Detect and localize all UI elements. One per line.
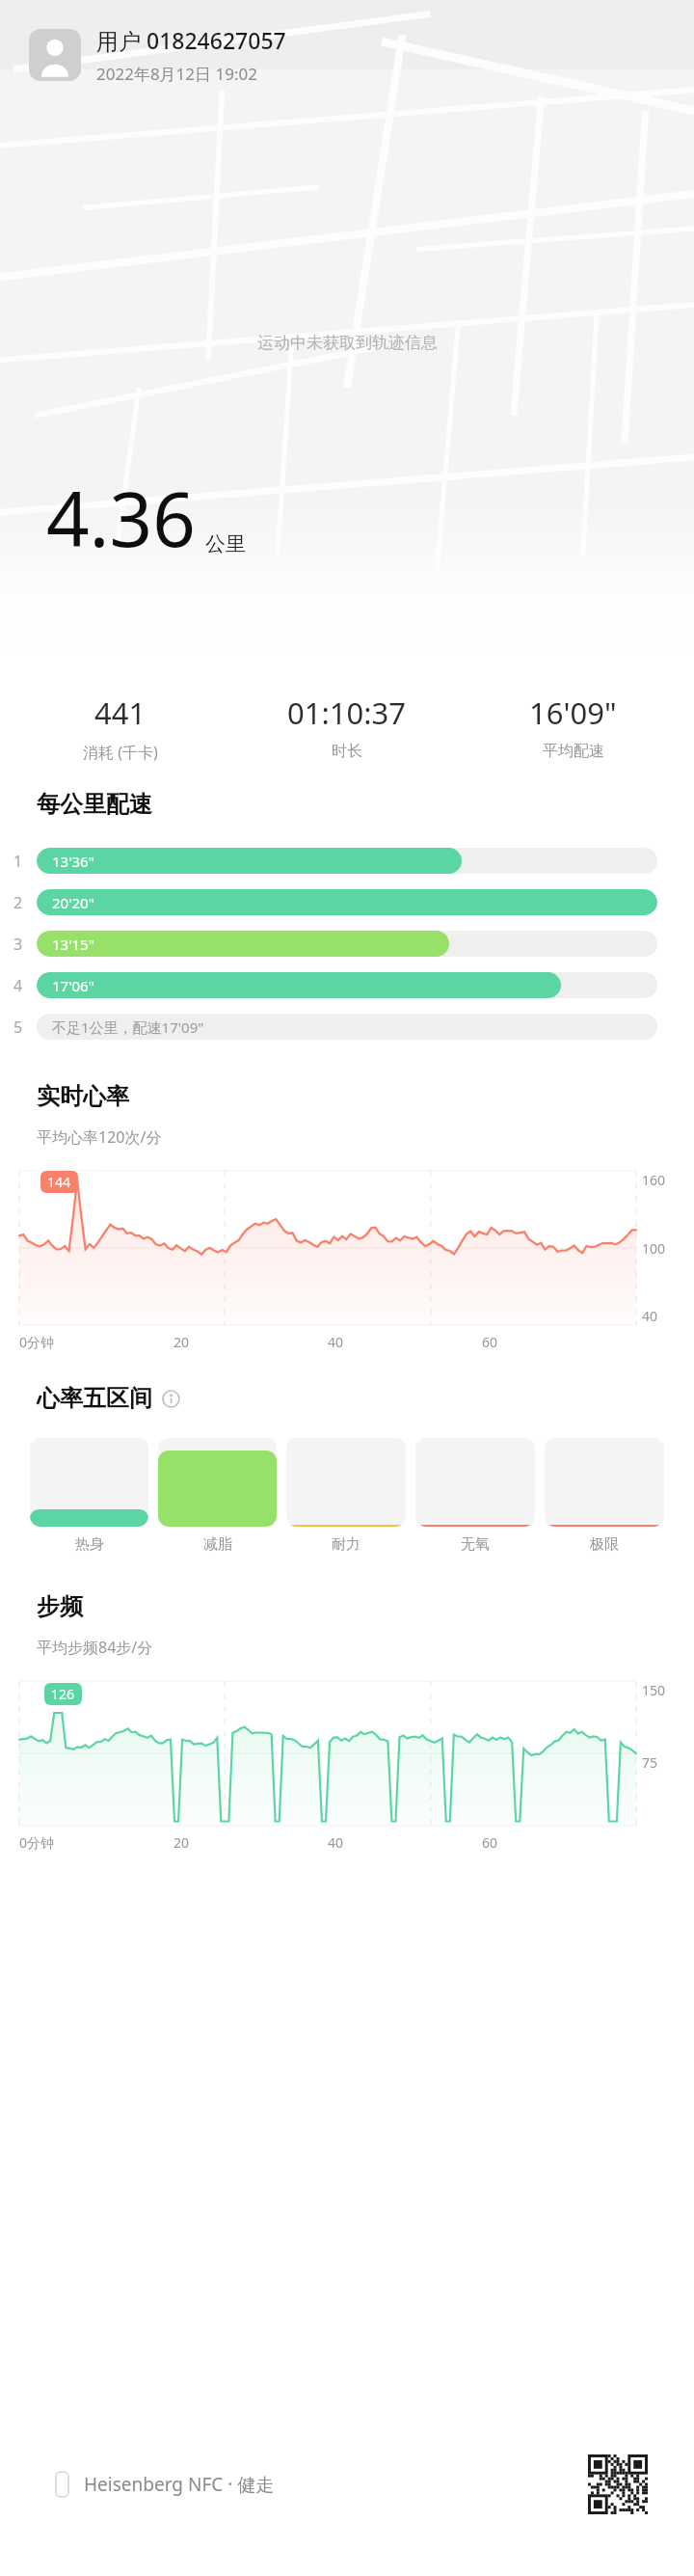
staticText: 3 — [13, 934, 23, 955]
staticText: 20'20" — [52, 893, 94, 912]
staticText: 减脂 — [203, 1535, 232, 1554]
staticText: 20 — [173, 1333, 328, 1351]
staticText: 17'06" — [52, 976, 94, 995]
staticText: 5 — [13, 1017, 23, 1038]
staticText: 13'36" — [52, 852, 94, 871]
staticText: 40 — [642, 1307, 658, 1325]
staticText: 441 — [94, 692, 147, 733]
staticText: 不足1公里，配速17'09" — [52, 1017, 204, 1037]
staticText: 60 — [482, 1833, 636, 1852]
staticText: 2 — [13, 892, 23, 913]
staticText: 75 — [642, 1753, 658, 1772]
staticText: 2022年8月12日 19:02 — [96, 63, 257, 85]
staticText: 每公里配速 — [37, 790, 152, 819]
button[interactable]: 5 — [0, 1006, 694, 1047]
staticText: 40 — [328, 1833, 482, 1852]
staticText: 144 — [47, 1173, 71, 1191]
staticText: 时长 — [332, 742, 362, 761]
staticText: 用户 01824627057 — [96, 25, 286, 55]
staticText: 100 — [642, 1239, 666, 1258]
staticText: 心率五区间 — [37, 1384, 152, 1413]
button[interactable]: 4 — [0, 964, 694, 1006]
staticText: 20 — [173, 1833, 328, 1852]
staticText: 运动中未获取到轨迹信息 — [257, 333, 438, 353]
button[interactable]: 1 — [0, 840, 694, 881]
staticText: 60 — [482, 1333, 636, 1351]
staticText: 160 — [642, 1171, 666, 1189]
button[interactable]: 2 — [0, 881, 694, 923]
staticText: 平均配速 — [543, 742, 604, 761]
button[interactable]: 耐力 — [286, 1438, 406, 1554]
button[interactable]: 极限 — [545, 1438, 664, 1554]
staticText: 步频 — [37, 1592, 83, 1621]
button[interactable]: 无氧 — [415, 1438, 535, 1554]
staticText: 126 — [51, 1685, 75, 1703]
staticText: 1 — [13, 851, 23, 872]
staticText: 0分钟 — [19, 1833, 173, 1852]
staticText: 4 — [13, 975, 23, 996]
button[interactable]: 3 — [0, 923, 694, 964]
staticText: 4.36 — [46, 467, 196, 569]
staticText: 13'15" — [52, 935, 94, 954]
staticText: 耐力 — [332, 1535, 360, 1554]
staticText: 热身 — [75, 1535, 104, 1554]
staticText: 平均心率120次/分 — [37, 1126, 162, 1148]
staticText: 公里 — [205, 531, 246, 556]
button[interactable]: 热身 — [30, 1438, 148, 1554]
staticText: 01:10:37 — [287, 692, 407, 733]
staticText: 极限 — [590, 1535, 619, 1554]
staticText: 40 — [328, 1333, 482, 1351]
staticText: 消耗 (千卡) — [83, 742, 158, 763]
staticText: 150 — [642, 1681, 666, 1699]
staticText: Heisenberg NFC · 健走 — [84, 2472, 275, 2497]
staticText: 实时心率 — [37, 1082, 129, 1111]
staticText: 无氧 — [461, 1535, 490, 1554]
staticText: 16'09" — [529, 692, 617, 733]
staticText: 0分钟 — [19, 1333, 173, 1351]
staticText: 平均步频84步/分 — [37, 1637, 153, 1658]
button[interactable]: 说明 — [162, 1390, 180, 1408]
button[interactable]: 减脂 — [158, 1438, 277, 1554]
